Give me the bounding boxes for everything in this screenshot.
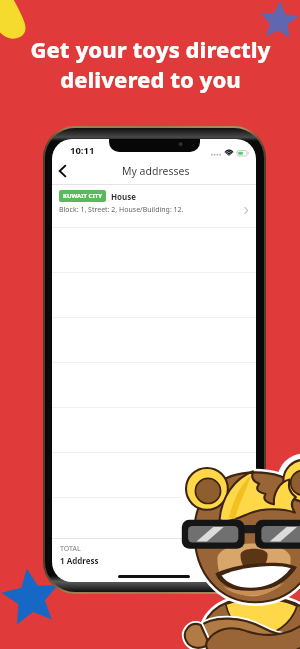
button[interactable]: KUWAIT CITY xyxy=(52,185,256,227)
staticText: delivered to you xyxy=(60,64,241,94)
button[interactable]: ADD xyxy=(207,545,248,565)
staticText: House xyxy=(111,191,137,202)
staticText: TOTAL xyxy=(60,544,81,554)
staticText: Get your toys directly xyxy=(30,34,271,64)
staticText: 1 Address xyxy=(60,555,99,566)
staticText: My addresses xyxy=(122,164,190,178)
button[interactable]: Back xyxy=(53,162,71,180)
staticText: 10:11 xyxy=(70,144,95,157)
staticText: KUWAIT CITY xyxy=(63,192,102,200)
staticText: Block: 1, Street: 2, House/Building: 12. xyxy=(59,205,184,215)
staticText: ADD xyxy=(224,550,241,560)
